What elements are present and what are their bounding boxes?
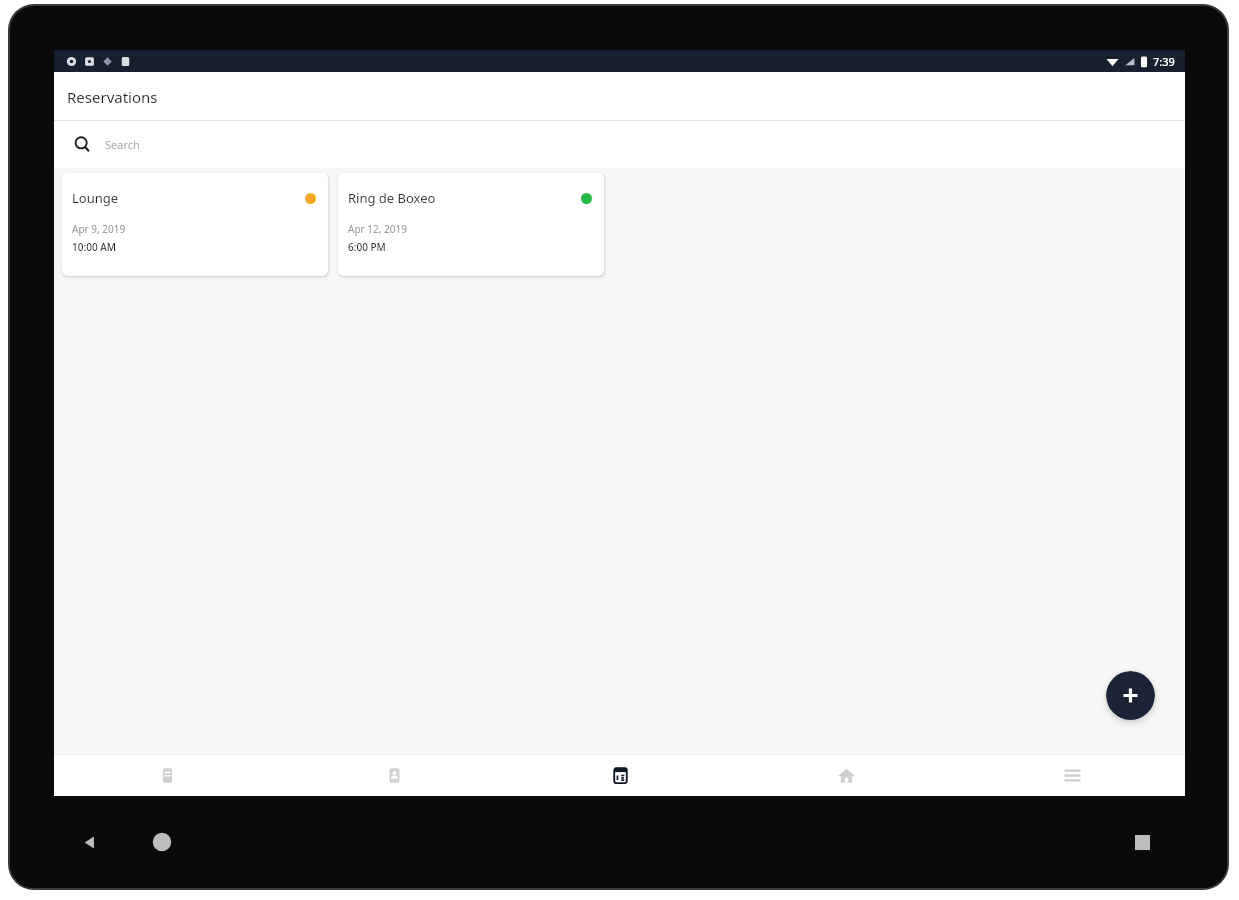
button[interactable]: Search bbox=[54, 121, 1185, 168]
button[interactable]: Receipts bbox=[54, 754, 281, 801]
button[interactable]: Back bbox=[72, 825, 106, 859]
button[interactable]: Home bbox=[733, 754, 959, 801]
staticText: 6:00 PM bbox=[348, 240, 386, 254]
staticText: Apr 12, 2019 bbox=[348, 222, 407, 236]
staticText: Ring de Boxeo bbox=[348, 189, 581, 207]
staticText: 7:39 bbox=[1153, 54, 1175, 69]
button[interactable]: Ring de Boxeo bbox=[338, 173, 604, 276]
button[interactable]: Menu bbox=[959, 754, 1185, 801]
button[interactable]: Add reservation bbox=[1106, 671, 1155, 720]
staticText: Apr 9, 2019 bbox=[72, 222, 126, 236]
button[interactable]: Home bbox=[144, 824, 180, 860]
button[interactable]: Recent apps bbox=[1125, 825, 1159, 859]
button[interactable]: Calendar bbox=[507, 754, 733, 801]
staticText: 10:00 AM bbox=[72, 240, 116, 254]
staticText: Lounge bbox=[72, 189, 305, 207]
staticText: Search bbox=[105, 137, 140, 152]
staticText: Reservations bbox=[67, 87, 158, 107]
button[interactable]: Profile bbox=[281, 754, 507, 801]
button[interactable]: Lounge bbox=[62, 173, 328, 276]
